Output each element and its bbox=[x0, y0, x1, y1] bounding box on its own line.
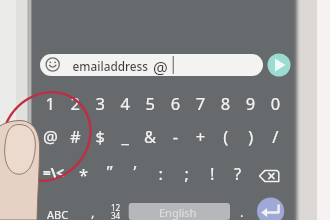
button[interactable] bbox=[0, 0, 330, 220]
